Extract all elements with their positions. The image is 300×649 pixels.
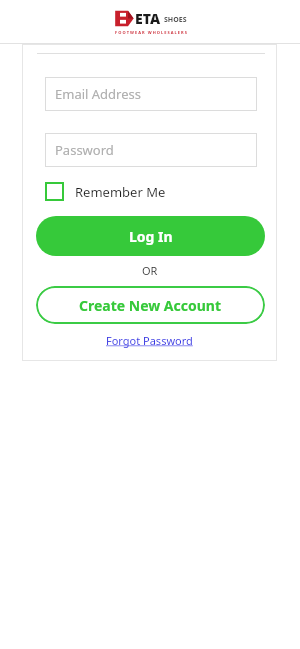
staticText: Remember Me xyxy=(75,183,166,201)
staticText: Log In xyxy=(129,227,173,246)
button[interactable]: Log In xyxy=(36,216,265,256)
button[interactable]: Forgot Password xyxy=(106,333,193,348)
button[interactable]: Password xyxy=(45,133,257,167)
staticText: ETA xyxy=(135,9,161,28)
staticText: F O O T W E A R W H O L E S A L E R S xyxy=(115,30,187,35)
button[interactable]: Email Address xyxy=(45,77,257,111)
staticText: Email Address xyxy=(55,85,141,103)
staticText: Create New Account xyxy=(79,296,222,315)
button[interactable]: Remember Me xyxy=(45,182,166,201)
staticText: Forgot Password xyxy=(106,333,193,348)
button[interactable]: Create New Account xyxy=(36,286,265,324)
staticText: OR xyxy=(142,263,158,278)
staticText: SHOES xyxy=(164,15,187,25)
staticText: Password xyxy=(55,141,114,159)
